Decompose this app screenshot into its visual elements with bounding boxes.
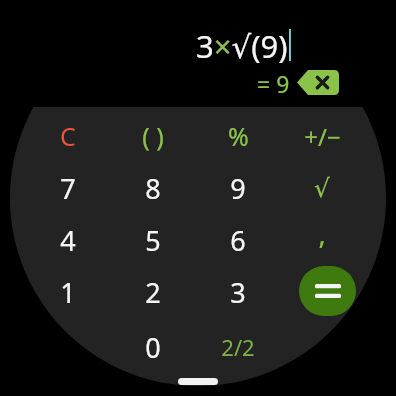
staticText: = 9: [257, 68, 290, 96]
staticText: 8: [145, 170, 161, 207]
staticText: 2/2: [221, 332, 255, 362]
button[interactable]: 3×√(9): [60, 25, 288, 67]
button[interactable]: Backspace: [297, 70, 339, 95]
staticText: 3: [230, 274, 246, 311]
button[interactable]: 2/2: [198, 324, 278, 370]
button[interactable]: +/−: [282, 113, 362, 159]
staticText: 6: [230, 222, 246, 259]
button[interactable]: 2: [113, 269, 193, 315]
button[interactable]: 9: [198, 165, 278, 211]
button[interactable]: 5: [113, 217, 193, 263]
button[interactable]: Equals: [299, 266, 356, 316]
button[interactable]: = 9: [190, 68, 290, 96]
staticText: 0: [145, 329, 161, 366]
staticText: ( ): [142, 119, 164, 153]
staticText: 1: [60, 274, 76, 311]
staticText: %: [228, 119, 249, 153]
staticText: √: [314, 174, 330, 203]
staticText: 5: [145, 222, 161, 259]
button[interactable]: C: [28, 113, 108, 159]
staticText: 4: [60, 222, 76, 259]
staticText: 9: [230, 170, 246, 207]
staticText: 3×√(9): [196, 25, 288, 67]
staticText: ,: [318, 215, 326, 252]
staticText: 7: [60, 170, 76, 207]
button[interactable]: 6: [198, 217, 278, 263]
button[interactable]: 1: [28, 269, 108, 315]
staticText: C: [60, 119, 76, 153]
staticText: 2: [145, 274, 161, 311]
button[interactable]: ( ): [113, 113, 193, 159]
button[interactable]: 3: [198, 269, 278, 315]
button[interactable]: 7: [28, 165, 108, 211]
button[interactable]: %: [198, 113, 278, 159]
button[interactable]: 0: [113, 324, 193, 370]
staticText: +/−: [304, 120, 341, 153]
button[interactable]: 4: [28, 217, 108, 263]
button[interactable]: √: [282, 165, 362, 211]
button[interactable]: Drag handle: [178, 378, 218, 385]
button[interactable]: ,: [282, 210, 362, 256]
button[interactable]: 8: [113, 165, 193, 211]
